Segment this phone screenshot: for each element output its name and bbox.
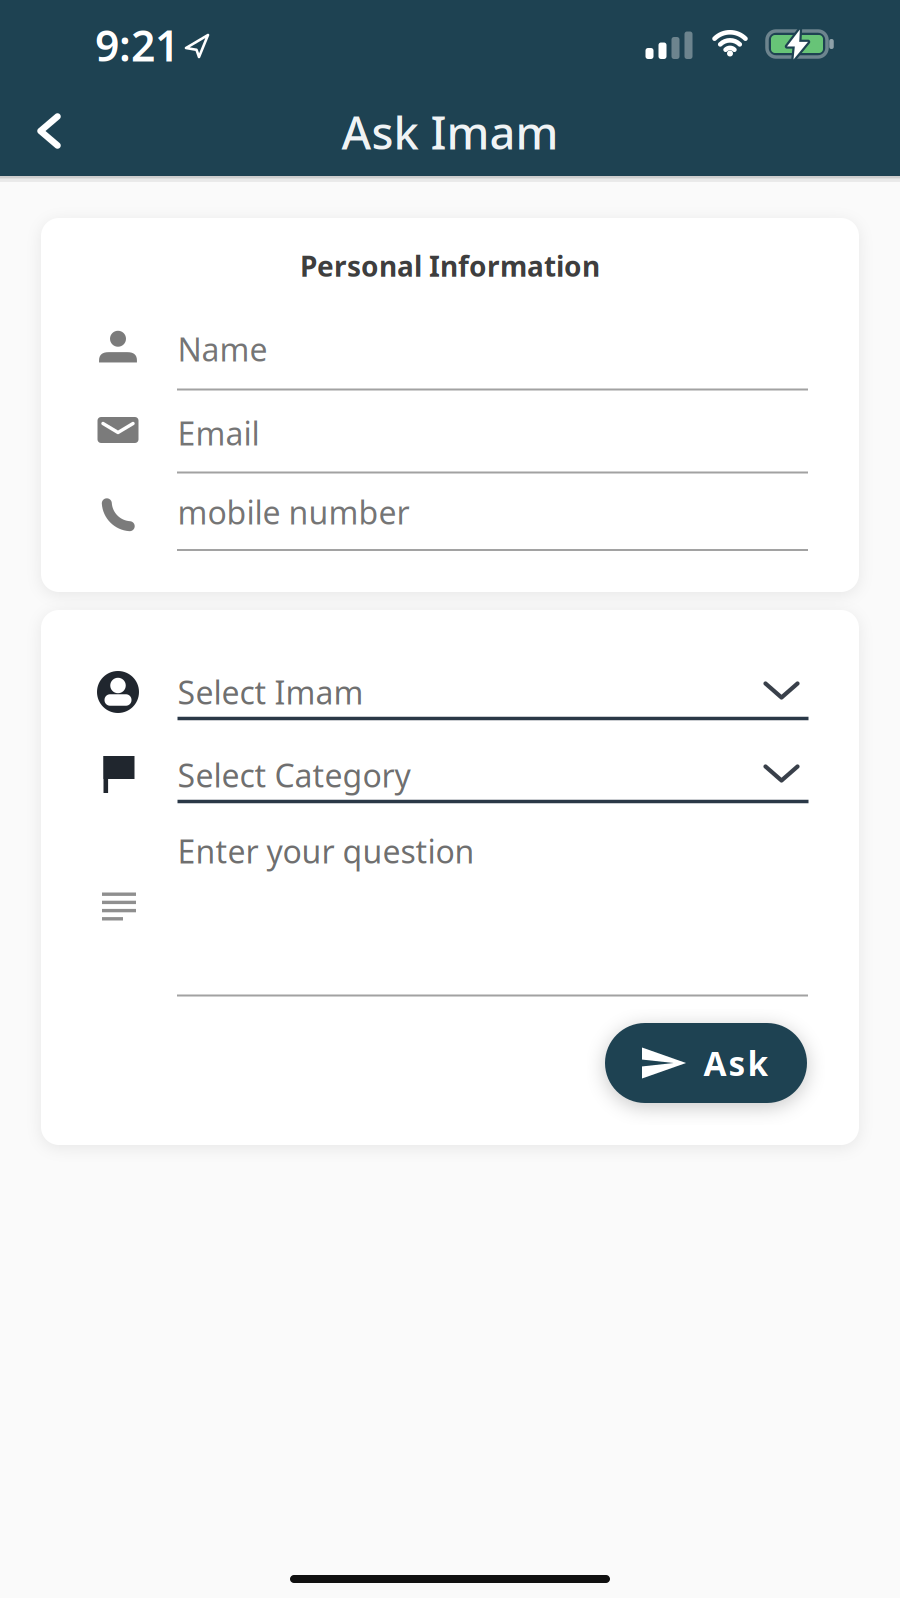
button[interactable]: Ask bbox=[605, 1023, 807, 1103]
button[interactable]: Enter your question bbox=[177, 830, 808, 1000]
staticText: Name bbox=[177, 328, 267, 370]
staticText: Personal Information bbox=[300, 247, 600, 285]
staticText: Enter your question bbox=[177, 830, 474, 872]
staticText: Select Category bbox=[177, 754, 410, 796]
button[interactable]: Select Category bbox=[177, 749, 808, 809]
button[interactable]: Email bbox=[177, 409, 808, 485]
staticText: Ask Imam bbox=[341, 102, 558, 162]
button[interactable]: Back bbox=[24, 100, 73, 161]
staticText: 9:21 bbox=[95, 17, 179, 73]
staticText: Select Imam bbox=[177, 671, 363, 713]
button[interactable]: Name bbox=[177, 325, 808, 401]
button[interactable]: Mobile number bbox=[177, 488, 808, 564]
staticText: Ask bbox=[703, 1041, 768, 1085]
button[interactable]: Select Imam bbox=[177, 666, 808, 726]
staticText: mobile number bbox=[177, 491, 409, 533]
staticText: Email bbox=[177, 412, 259, 454]
